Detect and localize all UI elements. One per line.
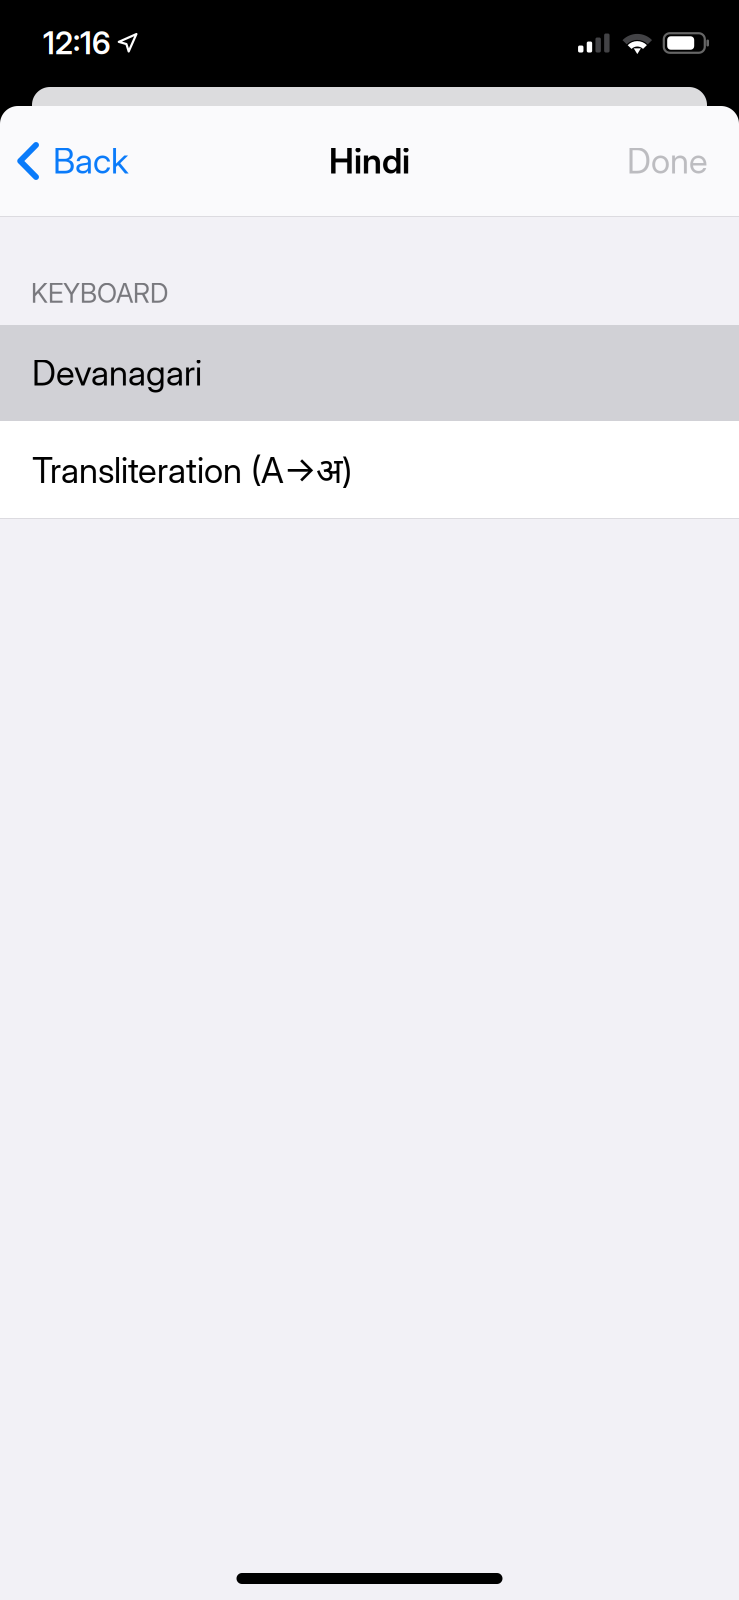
staticText: Devanagari — [32, 352, 202, 394]
button[interactable]: Back — [0, 106, 145, 216]
staticText: Hindi — [329, 140, 410, 182]
staticText: Done — [627, 140, 708, 182]
button[interactable]: Devanagari — [0, 325, 739, 421]
button[interactable]: Done — [611, 106, 739, 216]
button[interactable]: Transliteration (A→अ) — [0, 421, 739, 518]
staticText: 12:16 — [43, 24, 111, 61]
staticText: Transliteration (A→अ) — [32, 446, 352, 493]
staticText: KEYBOARD — [31, 277, 168, 309]
staticText: Back — [53, 140, 129, 182]
